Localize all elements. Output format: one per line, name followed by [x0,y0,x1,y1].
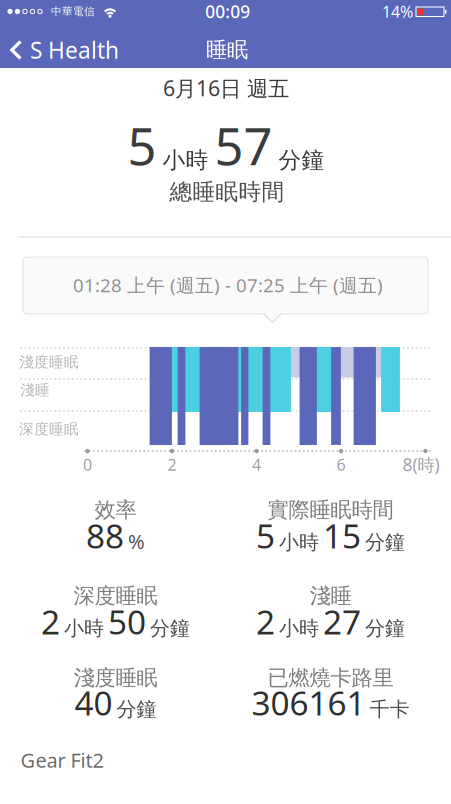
staticText: 50 [108,599,146,644]
staticText: 分鐘 [365,616,405,641]
staticText: 分鐘 [116,697,156,722]
staticText: 8(時) [402,453,439,476]
staticText: 40 [74,680,112,725]
staticText: 小時 [64,616,104,641]
staticText: 0 [83,454,92,475]
staticText: 分鐘 [150,616,190,641]
staticText: 淺度睡眠 [19,353,79,371]
staticText: 5 [256,513,275,558]
staticText: % [128,528,145,555]
staticText: 88 [86,513,124,558]
staticText: 27 [323,599,361,644]
staticText: 01:28 上午 (週五) - 07:25 上午 (週五) [73,273,383,297]
staticText: 小時 [279,530,319,555]
staticText: 淺度睡眠 [73,665,157,691]
staticText: 2 [167,454,176,475]
staticText: 分鐘 [365,530,405,555]
staticText: 00:09 [205,0,250,23]
staticText: 6月16日 週五 [163,74,289,102]
staticText: 306161 [251,680,365,725]
button[interactable]: Back [1,29,119,71]
staticText: 睡眠 [206,37,248,63]
staticText: 總睡眠時間 [169,178,284,206]
staticText: 分鐘 [278,146,324,174]
staticText: 深度睡眠 [19,420,79,438]
staticText: 深度睡眠 [73,583,157,609]
staticText: 實際睡眠時間 [267,497,393,523]
staticText: 5 [127,112,156,179]
staticText: 千卡 [369,697,409,722]
staticText: 小時 [279,616,319,641]
staticText: S Health [30,35,119,65]
staticText: 57 [214,112,272,179]
staticText: 2 [41,599,60,644]
staticText: Gear Fit2 [20,747,103,773]
staticText: 6 [336,454,345,475]
staticText: 小時 [162,146,208,174]
staticText: 效率 [94,497,136,523]
staticText: 中華電信 [51,5,95,18]
staticText: 淺睡 [20,381,50,399]
staticText: 淺睡 [309,583,351,609]
staticText: 2 [256,599,275,644]
staticText: 已燃燒卡路里 [267,665,393,691]
staticText: 4 [252,454,261,475]
staticText: 15 [323,513,361,558]
staticText: 14% [382,1,413,22]
